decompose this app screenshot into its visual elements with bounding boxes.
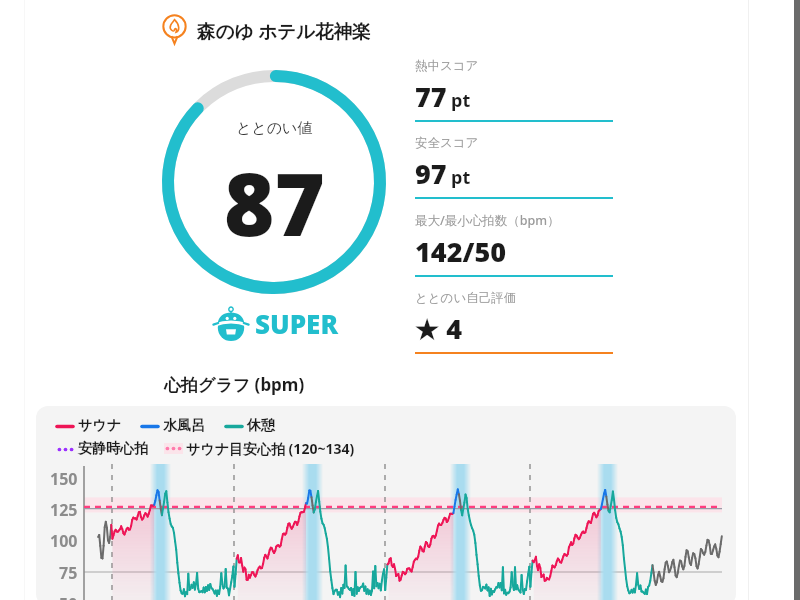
staticText: 142/50 (415, 233, 507, 270)
staticText: 75 (59, 562, 78, 582)
staticText: 50 (59, 593, 78, 600)
staticText: 安全スコア (415, 135, 479, 151)
button[interactable]: サウナ目安心拍 (120~134) (164, 439, 355, 458)
button[interactable]: Super rank (211, 303, 338, 343)
staticText: 125 (50, 499, 78, 519)
staticText: 森のゆ ホテル花神楽 (197, 18, 371, 43)
other: Sauna location (159, 14, 190, 45)
button[interactable]: ととのい自己評価 (415, 290, 613, 354)
staticText: pt (451, 88, 471, 113)
staticText: 心拍グラフ (bpm) (164, 373, 305, 396)
staticText: 熱中スコア (415, 58, 479, 74)
button[interactable]: Sauna location (159, 14, 371, 45)
staticText: ととのい値 (236, 119, 313, 138)
staticText: 100 (50, 530, 78, 550)
other: Super rank (211, 303, 251, 343)
staticText: サウナ目安心拍 (120~134) (186, 439, 355, 458)
staticText: SUPER (255, 306, 338, 341)
staticText: 休憩 (247, 417, 275, 435)
button[interactable]: サウナ (56, 417, 121, 435)
button[interactable]: 休憩 (225, 417, 275, 435)
button[interactable]: ととのい値 (162, 70, 386, 294)
staticText: 150 (50, 468, 78, 488)
button[interactable]: 安全スコア (415, 135, 613, 199)
button[interactable]: 水風呂 (141, 417, 205, 435)
staticText: 87 (224, 144, 325, 261)
staticText: ととのい自己評価 (415, 290, 517, 306)
staticText: 77 (415, 78, 447, 115)
staticText: 97 (415, 155, 447, 192)
staticText: 水風呂 (163, 417, 205, 435)
staticText: pt (451, 165, 471, 190)
staticText: ★ 4 (415, 310, 463, 347)
staticText: 最大/最小心拍数（bpm） (415, 212, 560, 229)
button[interactable]: 安静時心拍 (56, 440, 148, 458)
button[interactable]: サウナ (36, 406, 736, 600)
button[interactable]: 熱中スコア (415, 58, 613, 122)
staticText: サウナ (78, 417, 121, 435)
staticText: 安静時心拍 (78, 440, 148, 458)
button[interactable]: 最大/最小心拍数（bpm） (415, 212, 613, 277)
